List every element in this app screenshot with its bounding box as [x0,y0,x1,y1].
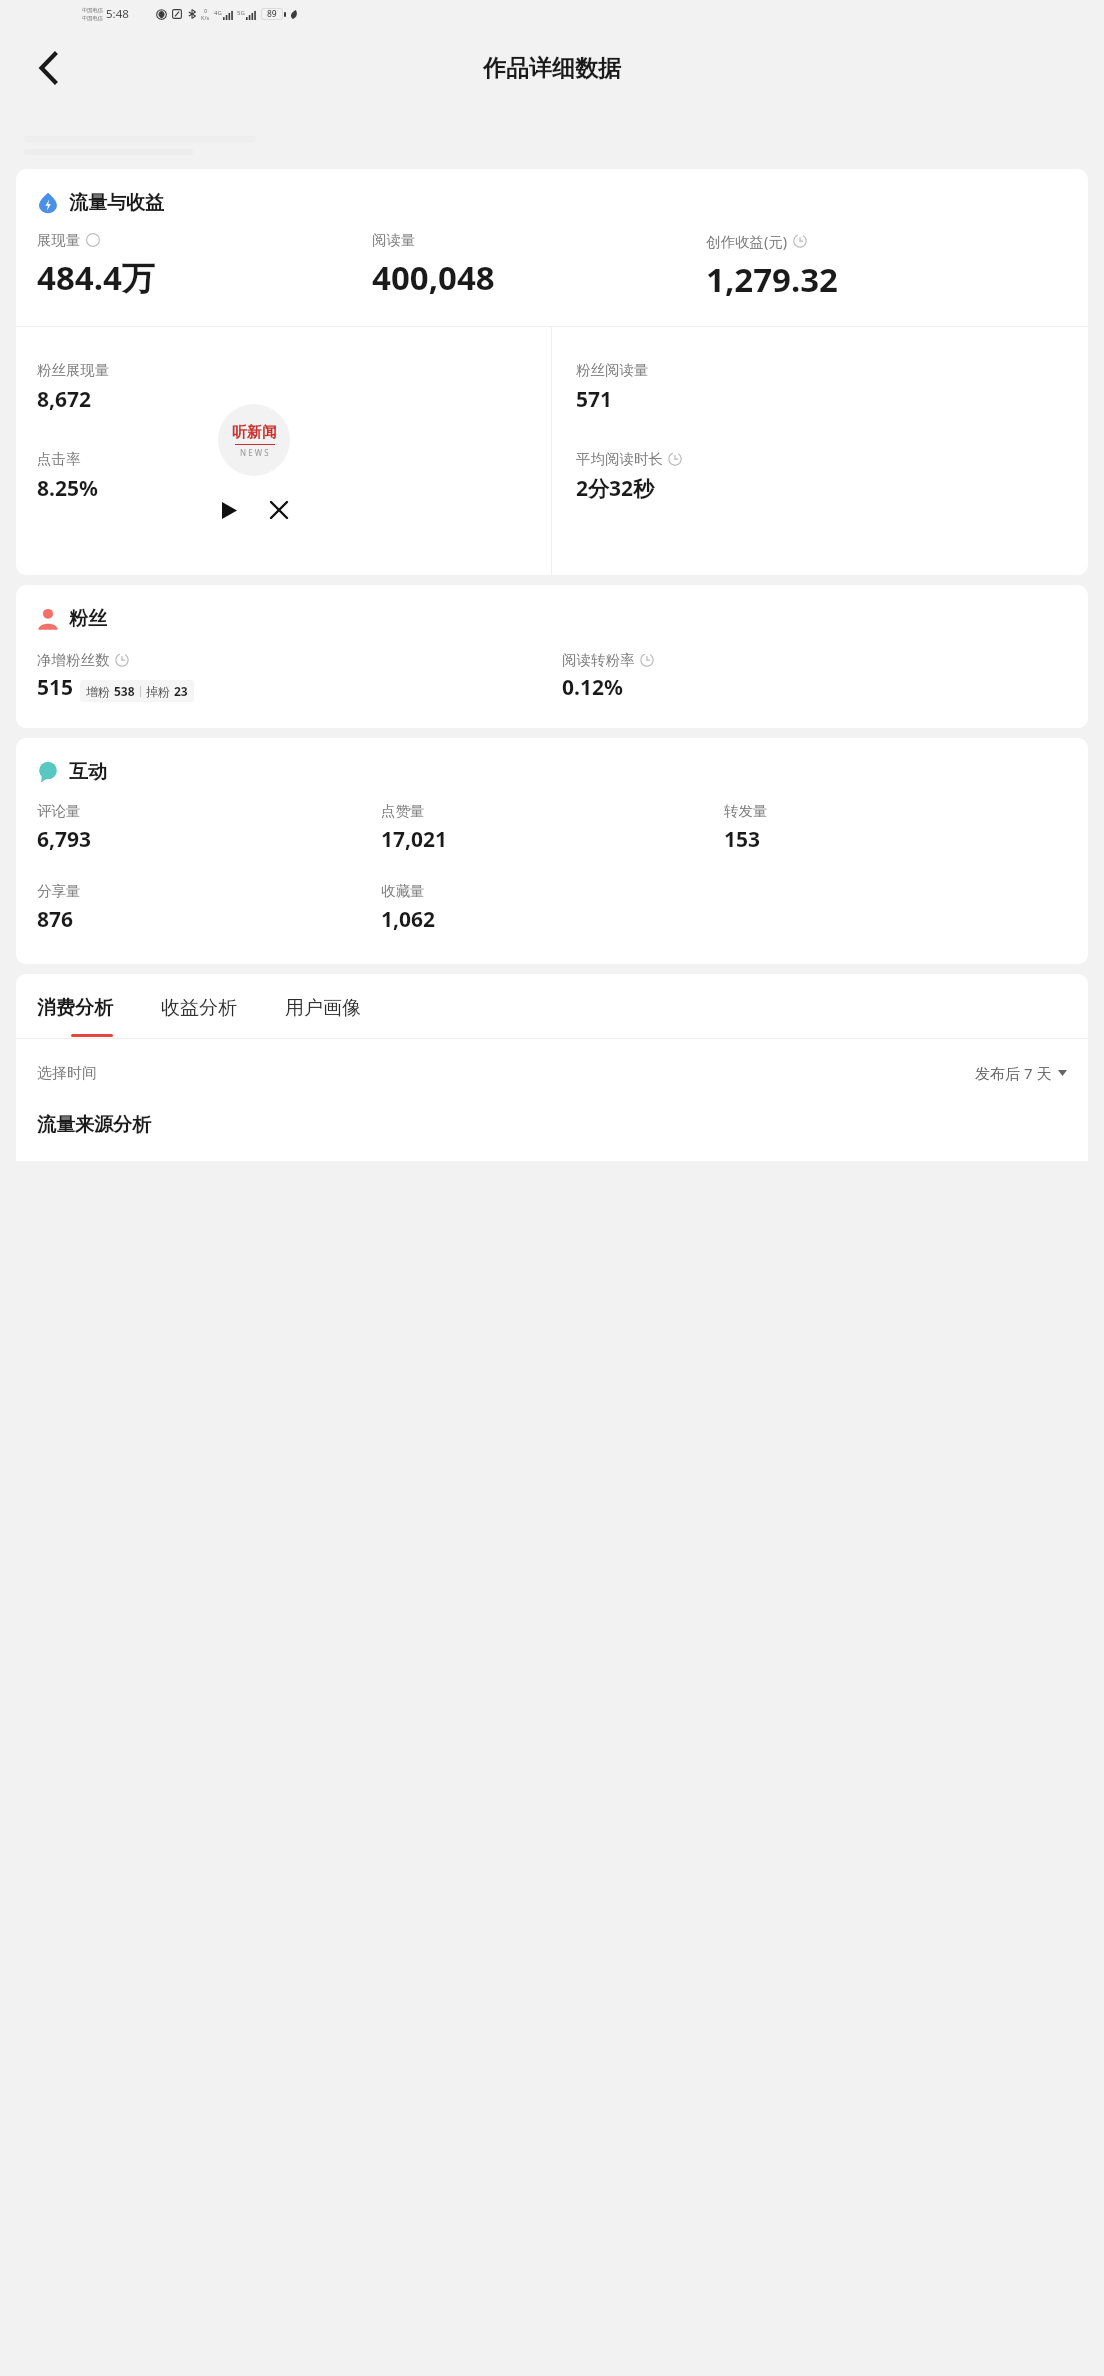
staticText: 分享量 [37,882,81,900]
staticText: 400,048 [372,255,495,300]
staticText: 点击率 [37,450,81,468]
button[interactable]: 用户画像 [285,996,361,1020]
staticText: 流量与收益 [69,191,164,215]
staticText: 发布后 7 天 [975,1063,1052,1083]
staticText: 创作收益(元) [706,231,788,251]
staticText: 互动 [69,760,107,784]
staticText: 89 [267,8,277,20]
staticText: 听新闻 [232,423,277,442]
staticText: 1,062 [381,905,436,934]
staticText: 增粉 [86,684,110,699]
staticText: 阅读转粉率 [562,651,635,669]
staticText: 8,672 [37,385,92,414]
staticText: 1,279.32 [706,257,838,302]
staticText: 484.4万 [37,255,155,300]
button[interactable]: Close [264,495,294,525]
staticText: 515 [37,673,74,702]
staticText: 转发量 [724,802,768,820]
staticText: 17,021 [381,825,448,854]
staticText: 0 [204,7,208,14]
button[interactable]: 选择时间 [37,1063,1067,1083]
staticText: 5:48 [106,6,129,22]
staticText: 选择时间 [37,1064,97,1083]
staticText: 收藏量 [381,882,425,900]
staticText: 中国电信 [82,7,103,14]
staticText: 571 [576,385,613,414]
staticText: K/s [201,14,210,21]
staticText: 5G [237,9,245,17]
staticText: 4G [214,9,222,17]
staticText: N E W S [240,447,269,458]
staticText: 中国电信 [82,15,103,22]
staticText: 收益分析 [161,996,237,1020]
staticText: 流量来源分析 [37,1113,151,1137]
staticText: 538 [114,683,135,699]
staticText: 消费分析 [37,996,113,1020]
staticText: 粉丝 [69,607,107,631]
button[interactable]: 收益分析 [161,996,237,1020]
staticText: 8.25% [37,474,98,503]
staticText: 用户画像 [285,996,361,1020]
staticText: 阅读量 [372,231,416,249]
staticText: 粉丝展现量 [37,361,110,379]
staticText: 粉丝阅读量 [576,361,649,379]
staticText: 153 [724,825,761,854]
button[interactable]: Back [22,43,72,93]
staticText: 平均阅读时长 [576,450,663,468]
button[interactable]: 消费分析 [37,996,113,1020]
staticText: 作品详细数据 [483,54,621,83]
staticText: 评论量 [37,802,81,820]
staticText: 0.12% [562,673,623,702]
staticText: 掉粉 [146,684,170,699]
staticText: 点赞量 [381,802,425,820]
staticText: 876 [37,905,74,934]
staticText: 6,793 [37,825,92,854]
staticText: 展现量 [37,231,81,249]
button[interactable]: Play [214,495,244,525]
staticText: 23 [174,683,188,699]
staticText: 2分32秒 [576,474,655,503]
staticText: 净增粉丝数 [37,651,110,669]
